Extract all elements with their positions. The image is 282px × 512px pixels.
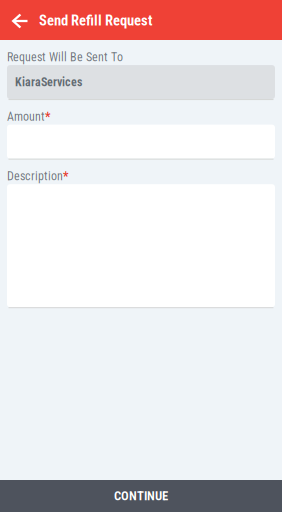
staticText: Amount xyxy=(7,110,45,124)
button[interactable]: CONTINUE xyxy=(0,480,282,512)
button[interactable]: Back xyxy=(6,0,34,40)
staticText: KiaraServices xyxy=(15,75,82,89)
staticText: Request Will Be Sent To xyxy=(7,50,123,64)
staticText: * xyxy=(45,110,50,124)
staticText: * xyxy=(63,169,68,183)
staticText: Send Refill Request xyxy=(39,12,152,29)
staticText: CONTINUE xyxy=(114,489,168,503)
staticText: Description xyxy=(7,169,63,183)
